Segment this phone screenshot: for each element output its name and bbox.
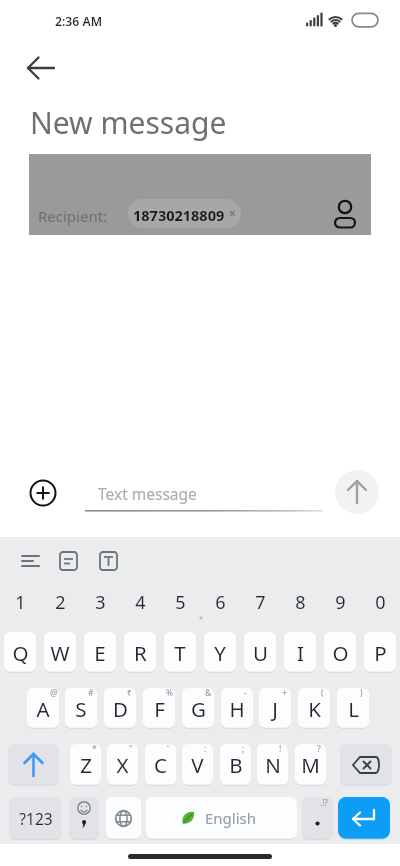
button[interactable]: U <box>244 632 276 673</box>
staticText: H <box>229 695 245 723</box>
staticText: K <box>308 695 321 723</box>
button[interactable]: B <box>220 744 251 786</box>
button[interactable]: W <box>44 632 76 673</box>
button[interactable]: 5 <box>160 590 200 614</box>
button[interactable]: M <box>295 744 326 786</box>
button[interactable] <box>329 192 371 235</box>
button[interactable]: N <box>257 744 288 786</box>
button[interactable]: V <box>182 744 213 786</box>
staticText: New message <box>30 102 227 143</box>
staticText: A <box>36 695 50 723</box>
button[interactable]: S <box>65 688 97 729</box>
staticText: 7 <box>255 590 266 614</box>
button[interactable]: G <box>182 688 214 729</box>
button[interactable] <box>69 797 99 840</box>
button[interactable]: J <box>259 688 291 729</box>
staticText: ?123 <box>19 808 53 829</box>
button[interactable]: C <box>145 744 176 786</box>
button[interactable] <box>106 797 141 840</box>
staticText: V <box>191 751 204 779</box>
staticText: M <box>301 751 320 779</box>
button[interactable]: I <box>284 632 316 673</box>
button[interactable]: K <box>298 688 330 729</box>
staticText: N <box>265 751 281 779</box>
button[interactable]: 2 <box>40 590 80 614</box>
staticText: R <box>134 639 147 667</box>
button[interactable] <box>302 797 333 840</box>
button[interactable] <box>335 470 379 514</box>
button[interactable] <box>24 474 62 512</box>
staticText: Y <box>214 639 226 667</box>
button[interactable] <box>146 797 297 840</box>
staticText: 0 <box>375 590 386 614</box>
button[interactable]: T <box>164 632 196 673</box>
button[interactable]: X <box>107 744 138 786</box>
staticText: L <box>348 695 359 723</box>
staticText: ; <box>242 743 245 755</box>
staticText: X <box>116 751 129 779</box>
button[interactable]: 0 <box>360 590 400 614</box>
button[interactable]: 8 <box>280 590 320 614</box>
button[interactable]: 18730218809 <box>128 199 241 228</box>
button[interactable]: 9 <box>320 590 360 614</box>
button[interactable] <box>52 545 84 577</box>
staticText: 1 <box>15 590 26 614</box>
button[interactable] <box>18 50 62 86</box>
staticText: + <box>282 687 287 699</box>
button[interactable] <box>340 744 392 786</box>
button[interactable]: 3 <box>80 590 120 614</box>
button[interactable]: R <box>124 632 156 673</box>
staticText: % <box>166 687 174 699</box>
staticText: ( <box>321 687 324 699</box>
button[interactable]: Z <box>70 744 101 786</box>
staticText: 8 <box>295 590 306 614</box>
button[interactable]: Q <box>4 632 36 673</box>
staticText: E <box>94 639 106 667</box>
button[interactable]: Y <box>204 632 236 673</box>
button[interactable]: A <box>27 688 59 729</box>
staticText: * <box>92 743 97 755</box>
staticText: I <box>297 639 304 667</box>
staticText: ? <box>317 743 321 755</box>
button[interactable]: L <box>337 688 369 729</box>
button[interactable]: 7 <box>240 590 280 614</box>
staticText: Recipient: <box>38 206 108 226</box>
button[interactable]: H <box>221 688 253 729</box>
staticText: W <box>50 639 70 667</box>
staticText: O <box>332 639 349 667</box>
staticText: 3 <box>95 590 106 614</box>
button[interactable] <box>338 797 390 840</box>
staticText: 2:36 AM <box>55 13 102 30</box>
staticText: 2 <box>55 590 66 614</box>
staticText: English <box>205 808 257 828</box>
staticText: 9 <box>335 590 346 614</box>
staticText: U <box>253 639 268 667</box>
staticText: C <box>154 751 167 779</box>
staticText: G <box>191 695 206 723</box>
staticText: D <box>113 695 128 723</box>
button[interactable]: O <box>324 632 356 673</box>
staticText: 6 <box>215 590 226 614</box>
button[interactable]: 1 <box>0 590 40 614</box>
button[interactable]: P <box>364 632 396 673</box>
staticText: .!? <box>320 797 328 808</box>
button[interactable]: ?123 <box>9 797 62 840</box>
button[interactable]: D <box>104 688 136 729</box>
staticText: : <box>204 743 207 755</box>
button[interactable]: E <box>84 632 116 673</box>
button[interactable]: 6 <box>200 590 240 614</box>
staticText: Text message <box>98 483 197 504</box>
staticText: F <box>154 695 165 723</box>
button[interactable] <box>92 545 124 577</box>
button[interactable] <box>8 744 59 786</box>
button[interactable] <box>14 545 46 577</box>
staticText: - <box>244 687 247 699</box>
staticText: ) <box>360 687 363 699</box>
staticText: # <box>88 687 94 699</box>
staticText: & <box>205 687 212 699</box>
button[interactable]: 4 <box>120 590 160 614</box>
staticText: B <box>229 751 243 779</box>
staticText: 5 <box>175 590 186 614</box>
button[interactable]: F <box>143 688 175 729</box>
staticText: ₹ <box>127 687 132 699</box>
